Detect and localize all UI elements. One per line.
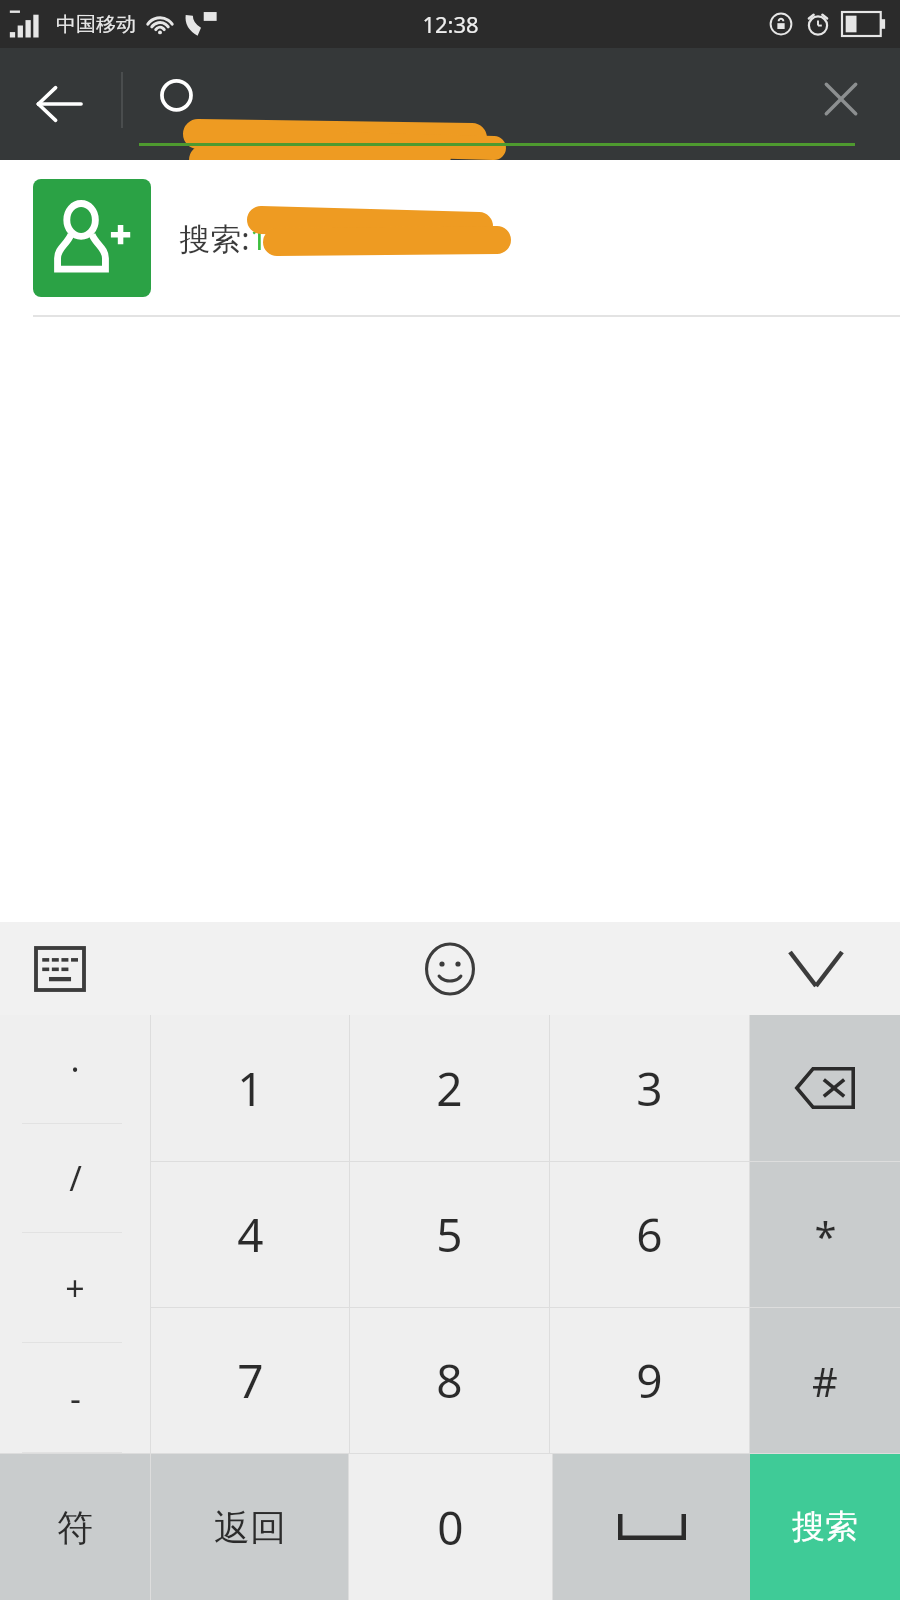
button[interactable]: ·: [0, 1015, 150, 1123]
button[interactable]: Space: [553, 1454, 750, 1600]
staticText: 6: [636, 1203, 663, 1266]
button[interactable]: 9: [550, 1308, 749, 1453]
button[interactable]: 2: [350, 1015, 549, 1161]
staticText: 7: [237, 1349, 264, 1412]
staticText: 搜索:: [179, 217, 250, 259]
button[interactable]: 3: [550, 1015, 749, 1161]
staticText: 搜索: [792, 1506, 858, 1548]
staticText: 返回: [214, 1505, 286, 1550]
staticText: 9: [636, 1349, 663, 1412]
staticText: 4: [237, 1203, 264, 1266]
button[interactable]: 7: [151, 1308, 349, 1453]
button[interactable]: 符: [0, 1454, 150, 1600]
button[interactable]: Emoji: [408, 927, 492, 1011]
staticText: 3: [636, 1057, 663, 1120]
staticText: 13912345222: [250, 218, 439, 259]
staticText: 中国移动: [56, 12, 136, 37]
button[interactable]: Clear: [782, 48, 900, 160]
button[interactable]: 4: [151, 1162, 349, 1307]
button[interactable]: +: [0, 1233, 150, 1342]
button[interactable]: 搜索:: [0, 160, 900, 315]
staticText: 12:38: [422, 9, 479, 39]
staticText: /: [69, 1155, 82, 1201]
button[interactable]: 返回: [151, 1454, 348, 1600]
staticText: 5: [436, 1203, 463, 1266]
button[interactable]: Hide keyboard: [774, 927, 858, 1011]
staticText: +: [65, 1265, 85, 1311]
button[interactable]: 8: [350, 1308, 549, 1453]
button[interactable]: /: [0, 1124, 150, 1232]
staticText: 8: [436, 1349, 463, 1412]
button[interactable]: 搜索: [750, 1454, 900, 1600]
button[interactable]: -: [0, 1343, 150, 1452]
staticText: #: [812, 1354, 838, 1408]
button[interactable]: Back: [0, 48, 118, 160]
staticText: 2: [436, 1057, 463, 1120]
button[interactable]: Keyboard layout: [20, 929, 100, 1009]
button[interactable]: 1: [151, 1015, 349, 1161]
staticText: ·: [70, 1046, 80, 1092]
button[interactable]: Backspace: [750, 1015, 900, 1161]
button[interactable]: 5: [350, 1162, 549, 1307]
staticText: 1: [237, 1057, 264, 1120]
button[interactable]: 0: [349, 1454, 552, 1600]
staticText: 符: [57, 1505, 93, 1550]
staticText: *: [814, 1208, 837, 1262]
button[interactable]: #: [750, 1308, 900, 1453]
staticText: 0: [437, 1496, 464, 1559]
button[interactable]: *: [750, 1162, 900, 1307]
staticText: -: [70, 1375, 81, 1421]
button[interactable]: 6: [550, 1162, 749, 1307]
